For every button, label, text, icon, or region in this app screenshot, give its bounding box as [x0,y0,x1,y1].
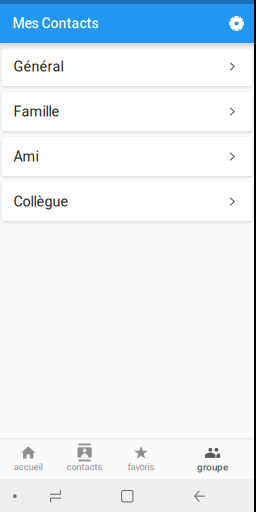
staticText: Mes Contacts [13,15,99,32]
staticText: favoris [127,462,154,473]
staticText: Ami [13,148,38,165]
button[interactable]: Général [2,47,252,86]
staticText: Famille [13,103,59,120]
button[interactable]: groupe [169,439,256,480]
staticText: groupe [197,461,228,473]
button[interactable]: Keyboard layout [0,479,30,512]
button[interactable]: Collègue [2,182,252,221]
button[interactable]: Switch apps [30,479,81,512]
button[interactable]: Ami [2,137,252,176]
button[interactable]: Recent apps [81,479,173,512]
staticText: accueil [14,462,43,473]
staticText: Général [13,58,63,75]
button[interactable]: Famille [2,92,252,131]
button[interactable]: favoris [113,439,169,480]
button[interactable]: Back [173,479,226,512]
staticText: Collègue [13,193,68,210]
staticText: contacts [67,462,103,473]
button[interactable]: Settings [221,6,253,40]
button[interactable]: accueil [0,439,56,480]
button[interactable]: contacts [56,439,113,480]
